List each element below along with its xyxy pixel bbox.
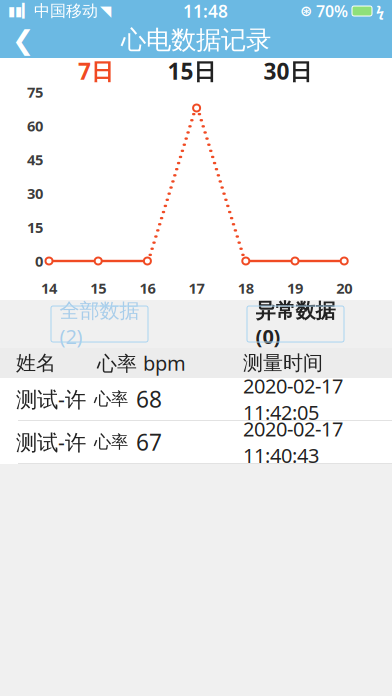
- button[interactable]: 测试-许: [0, 421, 392, 464]
- staticText: 45: [27, 150, 43, 169]
- staticText: 11:48: [183, 0, 228, 22]
- staticText: 15: [27, 217, 43, 237]
- staticText: 0: [35, 251, 43, 271]
- staticText: 15日: [167, 56, 216, 86]
- staticText: 异常数据(0): [255, 298, 335, 349]
- button[interactable]: Back: [0, 22, 46, 58]
- staticText: 75: [27, 82, 43, 102]
- staticText: 30: [27, 184, 43, 203]
- staticText: 测量时间: [243, 351, 323, 375]
- staticText: 心率: [94, 431, 128, 453]
- staticText: ▮▮▎: [8, 3, 32, 18]
- staticText: 30日: [263, 56, 312, 86]
- staticText: 2020-02-17 11:42:05: [243, 372, 343, 425]
- staticText: ❮: [12, 25, 34, 55]
- staticText: 7日: [78, 56, 114, 86]
- staticText: ϟ: [376, 1, 384, 21]
- staticText: ◥: [100, 3, 111, 19]
- button[interactable]: 7日: [48, 58, 144, 88]
- button[interactable]: 全部数据(2): [51, 306, 148, 342]
- button[interactable]: 异常数据(0): [247, 306, 344, 342]
- staticText: 67: [136, 427, 162, 457]
- button[interactable]: 30日: [240, 58, 336, 88]
- staticText: 2020-02-17 11:40:43: [243, 415, 343, 468]
- staticText: 60: [27, 116, 43, 136]
- staticText: 心电数据记录: [121, 24, 271, 55]
- staticText: 心率 bpm: [97, 350, 186, 376]
- staticText: 测试-许: [16, 385, 86, 413]
- staticText: 17: [189, 278, 205, 298]
- staticText: 14: [41, 278, 57, 298]
- staticText: 70%: [316, 0, 348, 22]
- staticText: 姓名: [16, 351, 56, 375]
- staticText: 16: [139, 278, 155, 298]
- staticText: 20: [336, 278, 352, 298]
- button[interactable]: 测试-许: [0, 378, 392, 421]
- staticText: 15: [90, 278, 106, 298]
- staticText: 中国移动: [34, 1, 98, 21]
- button[interactable]: 15日: [144, 58, 240, 88]
- staticText: 19: [287, 278, 303, 298]
- staticText: ⊛: [300, 3, 312, 19]
- staticText: 心率: [94, 388, 128, 410]
- staticText: 全部数据(2): [59, 298, 139, 349]
- staticText: 测试-许: [16, 428, 86, 456]
- staticText: 68: [136, 384, 162, 414]
- staticText: 18: [238, 278, 254, 298]
